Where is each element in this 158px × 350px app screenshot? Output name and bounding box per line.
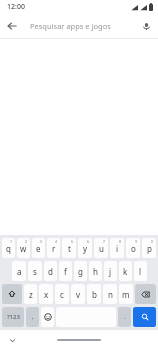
staticText: 1: [10, 239, 13, 244]
button[interactable]: Hide keyboard: [6, 334, 18, 346]
button[interactable]: j: [104, 261, 117, 281]
staticText: f: [64, 266, 67, 277]
button[interactable]: q: [2, 238, 15, 258]
button[interactable]: Search: [133, 307, 156, 327]
staticText: 5: [71, 239, 74, 244]
button[interactable]: k: [119, 261, 132, 281]
staticText: o: [131, 243, 136, 254]
staticText: w: [20, 243, 27, 254]
staticText: k: [123, 266, 128, 277]
staticText: 8: [119, 239, 122, 244]
staticText: e: [36, 243, 41, 254]
button[interactable]: i: [110, 238, 124, 258]
staticText: z: [29, 289, 33, 300]
button[interactable]: f: [59, 261, 72, 281]
staticText: ?123: [7, 313, 20, 321]
button[interactable]: v: [71, 284, 85, 304]
staticText: s: [33, 266, 37, 277]
button[interactable]: p: [142, 238, 156, 258]
button[interactable]: e: [32, 238, 45, 258]
staticText: v: [76, 289, 81, 300]
staticText: 12:00: [7, 2, 25, 12]
button[interactable]: Shift: [2, 284, 22, 304]
button[interactable]: d: [44, 261, 57, 281]
staticText: q: [6, 243, 11, 254]
staticText: 9: [135, 239, 138, 244]
button[interactable]: w: [17, 238, 30, 258]
staticText: y: [83, 243, 88, 254]
staticText: 0: [151, 239, 154, 244]
button[interactable]: Period: [118, 307, 131, 327]
button[interactable]: ?123: [2, 307, 24, 327]
staticText: .: [124, 313, 126, 321]
staticText: 2: [25, 239, 28, 244]
button[interactable]: Backspace: [135, 284, 156, 304]
button[interactable]: a: [12, 261, 26, 281]
button[interactable]: Comma: [26, 307, 39, 327]
button[interactable]: s: [28, 261, 42, 281]
staticText: p: [147, 243, 152, 254]
staticText: t: [68, 243, 71, 254]
button[interactable]: Emoji: [41, 307, 54, 327]
button[interactable]: r: [47, 238, 60, 258]
button[interactable]: l: [134, 261, 147, 281]
staticText: 3: [40, 239, 43, 244]
button[interactable]: Back: [0, 14, 24, 38]
button[interactable]: m: [119, 284, 133, 304]
button[interactable]: n: [103, 284, 117, 304]
button[interactable]: Pesquisar apps e jogos: [30, 21, 134, 31]
button[interactable]: x: [39, 284, 53, 304]
button[interactable]: y: [78, 238, 92, 258]
staticText: b: [92, 289, 97, 300]
staticText: ,: [32, 313, 34, 321]
button[interactable]: o: [126, 238, 140, 258]
staticText: 4: [55, 239, 58, 244]
staticText: n: [108, 289, 113, 300]
button[interactable]: b: [87, 284, 101, 304]
staticText: 7: [103, 239, 106, 244]
button[interactable]: h: [89, 261, 102, 281]
button[interactable]: Voice search: [134, 14, 158, 38]
button[interactable]: c: [55, 284, 69, 304]
staticText: g: [78, 266, 83, 277]
staticText: l: [139, 266, 142, 277]
staticText: a: [17, 266, 22, 277]
staticText: i: [116, 243, 119, 254]
button[interactable]: u: [94, 238, 108, 258]
button[interactable]: g: [74, 261, 87, 281]
staticText: x: [44, 289, 49, 300]
staticText: c: [60, 289, 64, 300]
staticText: 6: [87, 239, 90, 244]
staticText: h: [93, 266, 98, 277]
staticText: u: [99, 243, 104, 254]
button[interactable]: t: [62, 238, 76, 258]
staticText: r: [52, 243, 56, 254]
staticText: j: [109, 266, 112, 277]
staticText: d: [48, 266, 53, 277]
button[interactable]: z: [24, 284, 37, 304]
staticText: m: [122, 289, 130, 300]
